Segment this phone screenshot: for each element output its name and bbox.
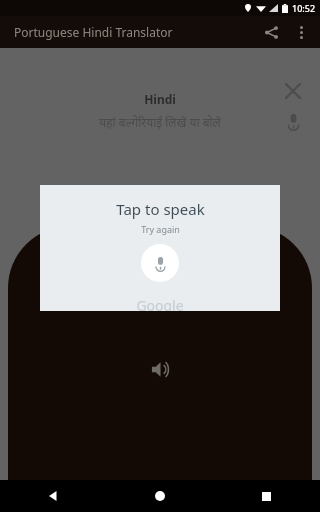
button[interactable]: Voice input bbox=[276, 104, 310, 138]
staticText: 10:52 bbox=[292, 2, 316, 14]
staticText: Tap to speak bbox=[116, 199, 205, 219]
staticText: Try again bbox=[141, 223, 180, 235]
staticText: Google bbox=[136, 296, 184, 311]
button[interactable]: Clear bbox=[276, 74, 310, 108]
staticText: Hindi bbox=[144, 91, 176, 107]
button[interactable]: Share bbox=[256, 17, 286, 47]
button[interactable]: Home bbox=[106, 480, 213, 512]
staticText: Portuguese Hindi Translator bbox=[14, 24, 173, 40]
staticText: Veja e ouça a tradução aqui bbox=[83, 267, 238, 283]
button[interactable]: Back bbox=[0, 480, 106, 512]
button[interactable]: Recents bbox=[213, 480, 320, 512]
button[interactable]: Listen bbox=[141, 350, 179, 388]
button[interactable]: More options bbox=[286, 17, 316, 47]
button[interactable]: Tap to speak bbox=[141, 244, 179, 282]
staticText: यहां बल्गेरियाई लिखें या बोलें bbox=[99, 114, 221, 130]
